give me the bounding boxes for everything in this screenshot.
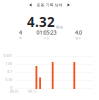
staticText: 1.00 bbox=[5, 62, 12, 66]
staticText: 4.0 bbox=[75, 29, 82, 36]
button[interactable]: Previous record bbox=[28, 1, 32, 8]
staticText: 점수 bbox=[75, 37, 81, 40]
staticText: 4.32 bbox=[27, 13, 55, 31]
staticText: 시간 bbox=[43, 37, 49, 40]
staticText: 4 bbox=[19, 29, 22, 36]
staticText: 0.7 bbox=[7, 70, 12, 74]
staticText: 08.15 bbox=[28, 90, 37, 93]
staticText: Km bbox=[56, 24, 63, 30]
staticText: 0.001 bbox=[3, 54, 12, 58]
staticText: 01:05:23 bbox=[36, 29, 56, 36]
staticText: 0.30 bbox=[5, 78, 12, 82]
button[interactable]: Next record bbox=[66, 1, 70, 8]
staticText: 회 bbox=[19, 37, 22, 40]
staticText: 0 bbox=[10, 86, 12, 90]
staticText: 08.01 bbox=[10, 90, 19, 93]
staticText: 운동 기록 상세 bbox=[36, 2, 62, 7]
